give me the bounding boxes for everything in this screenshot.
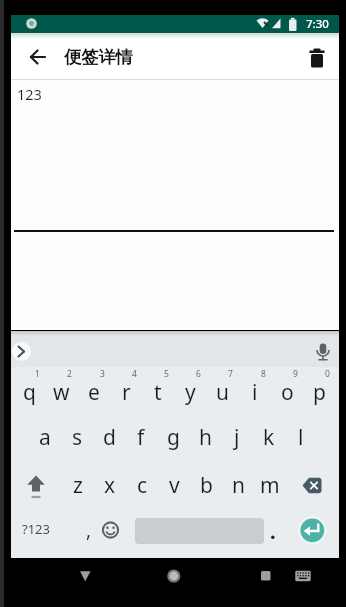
- button[interactable]: l: [261, 415, 341, 459]
- staticText: l: [298, 423, 304, 452]
- button[interactable]: [299, 470, 327, 498]
- button[interactable]: [286, 563, 316, 587]
- staticText: f: [137, 423, 145, 452]
- staticText: p: [313, 378, 326, 407]
- button[interactable]: [22, 470, 50, 498]
- button[interactable]: [313, 338, 333, 358]
- staticText: d: [103, 423, 116, 452]
- staticText: j: [234, 423, 240, 452]
- button[interactable]: h: [165, 415, 245, 459]
- button[interactable]: e: [54, 370, 134, 414]
- staticText: 5: [164, 368, 169, 380]
- staticText: x: [104, 471, 116, 500]
- button[interactable]: w: [21, 370, 101, 414]
- staticText: q: [23, 378, 36, 407]
- staticText: m: [260, 471, 280, 500]
- staticText: 9: [293, 368, 298, 380]
- staticText: 3: [100, 368, 105, 380]
- button[interactable]: g: [133, 415, 213, 459]
- staticText: t: [154, 378, 162, 407]
- staticText: i: [252, 378, 258, 407]
- staticText: w: [53, 378, 70, 407]
- staticText: b: [200, 471, 213, 500]
- staticText: h: [199, 423, 212, 452]
- staticText: s: [72, 423, 83, 452]
- staticText: 4: [132, 368, 137, 380]
- staticText: 2: [67, 368, 72, 380]
- button[interactable]: s: [37, 415, 117, 459]
- button[interactable]: [260, 516, 286, 544]
- staticText: 便签详情: [64, 46, 133, 68]
- staticText: v: [169, 471, 180, 500]
- staticText: 0: [325, 368, 330, 380]
- button[interactable]: [304, 45, 330, 71]
- staticText: 7:30: [306, 16, 329, 32]
- button[interactable]: ,: [49, 508, 129, 552]
- staticText: a: [39, 423, 51, 452]
- button[interactable]: b: [166, 463, 246, 507]
- staticText: 6: [196, 368, 201, 380]
- staticText: r: [122, 378, 131, 407]
- button[interactable]: y: [150, 370, 230, 414]
- button[interactable]: q: [0, 370, 69, 414]
- button[interactable]: u: [182, 370, 262, 414]
- button[interactable]: i: [215, 370, 295, 414]
- button[interactable]: j: [197, 415, 277, 459]
- button[interactable]: [72, 563, 100, 587]
- button[interactable]: p: [279, 370, 346, 414]
- button[interactable]: a: [5, 415, 85, 459]
- staticText: 7: [228, 368, 233, 380]
- staticText: 8: [261, 368, 266, 380]
- button[interactable]: c: [102, 463, 182, 507]
- button[interactable]: [159, 563, 187, 587]
- staticText: e: [88, 378, 100, 407]
- button[interactable]: [24, 44, 50, 70]
- button[interactable]: d: [69, 415, 149, 459]
- button[interactable]: r: [86, 370, 166, 414]
- staticText: ,: [86, 517, 92, 543]
- button[interactable]: n: [198, 463, 278, 507]
- button[interactable]: t: [118, 370, 198, 414]
- staticText: k: [263, 423, 275, 452]
- button[interactable]: f: [101, 415, 181, 459]
- button[interactable]: [96, 516, 124, 544]
- staticText: 1: [35, 368, 40, 380]
- button[interactable]: k: [229, 415, 309, 459]
- button[interactable]: [12, 338, 32, 358]
- staticText: o: [281, 378, 294, 407]
- button[interactable]: m: [230, 463, 310, 507]
- staticText: n: [232, 471, 245, 500]
- button[interactable]: [249, 563, 277, 587]
- button[interactable]: [298, 516, 325, 543]
- staticText: z: [73, 471, 83, 500]
- staticText: u: [216, 378, 229, 407]
- button[interactable]: o: [247, 370, 327, 414]
- button[interactable]: z: [38, 463, 118, 507]
- staticText: c: [137, 471, 148, 500]
- staticText: y: [185, 378, 196, 407]
- staticText: 123: [17, 84, 42, 104]
- staticText: ?123: [22, 520, 50, 538]
- button[interactable]: v: [134, 463, 214, 507]
- staticText: g: [167, 423, 180, 452]
- button[interactable]: ?123: [0, 507, 76, 551]
- button[interactable]: x: [70, 463, 150, 507]
